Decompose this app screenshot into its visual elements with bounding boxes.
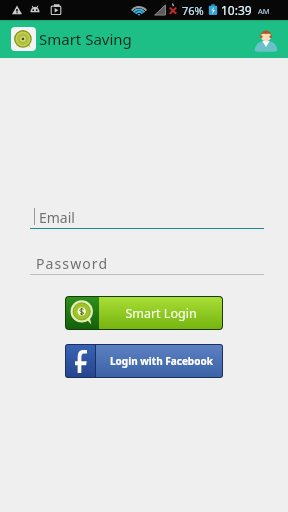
button[interactable]: Email [30,206,264,229]
staticText: AM [258,6,270,16]
button[interactable]: Login with Facebook [65,344,223,378]
staticText: Email [39,208,75,227]
button[interactable]: Smart Login [65,296,223,330]
staticText: Smart Saving [39,29,132,49]
staticText: Smart Login [125,305,197,322]
staticText: Password [36,254,109,273]
button[interactable]: Account [252,26,280,54]
staticText: 10:39 [221,2,252,18]
button[interactable]: Password [30,252,264,275]
staticText: 76% [182,3,204,18]
staticText: Login with Facebook [110,354,213,368]
